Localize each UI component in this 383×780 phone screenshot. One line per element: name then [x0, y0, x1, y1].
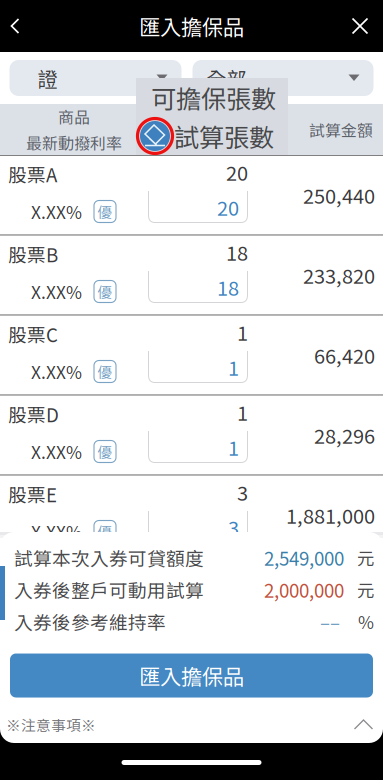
- staticText: 股票D: [8, 400, 59, 427]
- staticText: 3: [228, 512, 239, 541]
- staticText: 股票E: [8, 480, 57, 507]
- button[interactable]: 股票C: [0, 315, 383, 394]
- staticText: 試算本次入券可貸額度: [14, 544, 204, 571]
- staticText: 3: [237, 477, 248, 506]
- staticText: X.XX%: [31, 519, 82, 544]
- staticText: 66,420: [314, 340, 375, 369]
- staticText: 2,000,000: [264, 576, 344, 603]
- staticText: 2,549,000: [264, 544, 344, 571]
- staticText: X.XX%: [31, 199, 82, 224]
- staticText: 優: [97, 201, 112, 222]
- staticText: 可擔保張數: [151, 79, 276, 116]
- button[interactable]: 股票B: [0, 235, 383, 314]
- staticText: 1: [228, 352, 239, 381]
- staticText: 20: [226, 157, 248, 186]
- button[interactable]: ※注意事項※: [0, 709, 383, 739]
- staticText: 18: [217, 272, 239, 301]
- staticText: 233,820: [303, 260, 375, 289]
- staticText: 1: [237, 397, 248, 426]
- staticText: 最新動撥利率: [26, 131, 122, 154]
- staticText: 1: [237, 317, 248, 346]
- button[interactable]: Account picker: [9, 60, 181, 96]
- staticText: 18: [226, 237, 248, 266]
- staticText: 股票A: [8, 160, 57, 187]
- staticText: 全部: [206, 63, 246, 92]
- staticText: 元: [357, 545, 374, 570]
- button[interactable]: 股票E: [0, 475, 383, 554]
- staticText: 證: [37, 63, 61, 92]
- staticText: 優: [97, 441, 112, 462]
- button[interactable]: 股票D: [0, 395, 383, 474]
- staticText: ––: [320, 608, 344, 635]
- staticText: 優: [97, 521, 112, 542]
- staticText: 20: [217, 192, 239, 221]
- staticText: 試算張數: [174, 118, 274, 154]
- staticText: 股票C: [8, 320, 58, 347]
- staticText: 優: [97, 361, 112, 382]
- button[interactable]: Category picker: [192, 60, 373, 96]
- button[interactable]: Back: [0, 0, 44, 52]
- staticText: ※注意事項※: [6, 714, 96, 735]
- staticText: 可擔保張數: [159, 105, 239, 128]
- staticText: 優: [97, 281, 112, 302]
- staticText: 元: [357, 577, 374, 602]
- staticText: 28,296: [314, 420, 375, 449]
- staticText: 商品: [58, 105, 90, 128]
- staticText: 入券後整戶可動用試算: [14, 576, 204, 603]
- staticText: 試算金額: [309, 118, 373, 141]
- button[interactable]: 股票A: [0, 155, 383, 234]
- staticText: X.XX%: [31, 439, 82, 464]
- staticText: 匯入擔保品: [139, 660, 244, 691]
- staticText: 250,440: [303, 180, 375, 209]
- staticText: X.XX%: [31, 279, 82, 304]
- staticText: 1,881,000: [286, 500, 375, 529]
- staticText: 入券後參考維持率: [14, 608, 166, 635]
- staticText: 試算張數: [167, 131, 231, 154]
- staticText: 1: [228, 432, 239, 461]
- staticText: X.XX%: [31, 359, 82, 384]
- button[interactable]: Close: [339, 0, 383, 52]
- staticText: 匯入擔保品: [139, 11, 244, 41]
- staticText: %: [358, 609, 374, 634]
- button[interactable]: 匯入擔保品: [10, 653, 373, 697]
- staticText: 股票B: [8, 240, 58, 267]
